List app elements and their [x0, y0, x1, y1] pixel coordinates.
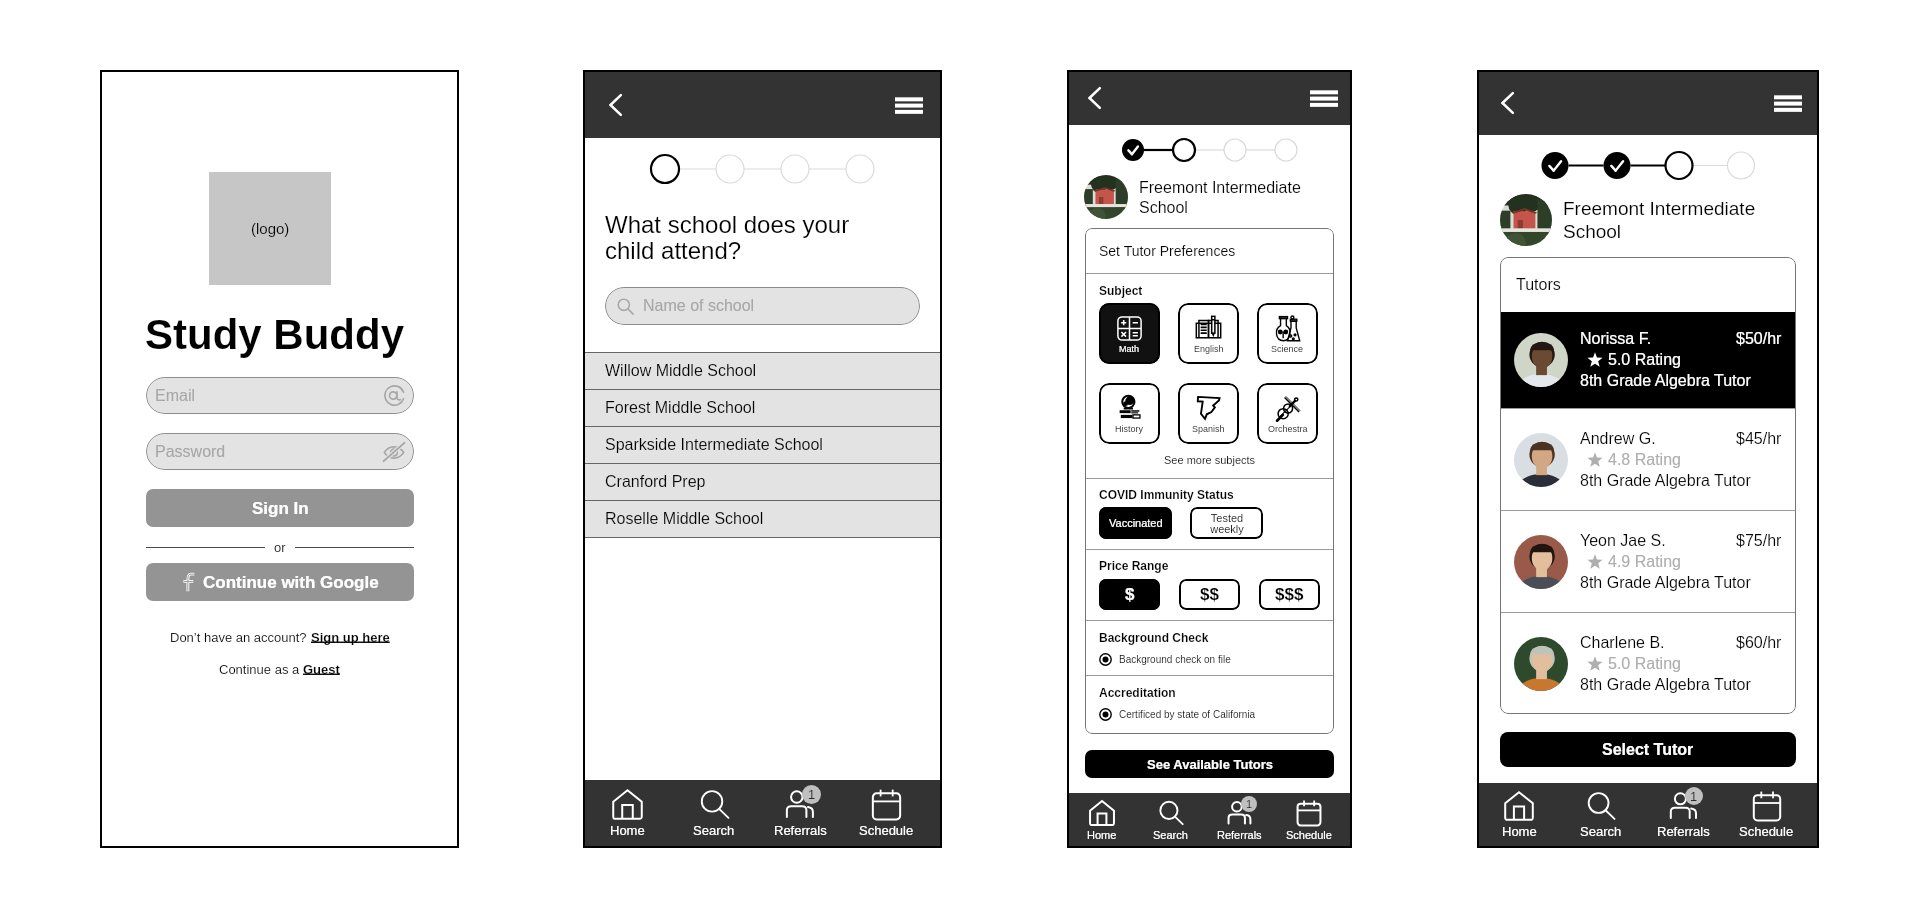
button[interactable]: Sparkside Intermediate School: [584, 427, 941, 463]
button[interactable]: Search: [671, 780, 757, 847]
staticText: What school does your child attend?: [605, 211, 850, 264]
staticText: $$$: [1275, 585, 1304, 604]
staticText: Sign In: [252, 499, 309, 518]
staticText: Search: [1153, 829, 1188, 841]
staticText: Cranford Prep: [605, 473, 706, 491]
button[interactable]: Menu: [1774, 89, 1802, 117]
staticText: See Available Tutors: [1147, 757, 1273, 772]
button[interactable]: Home: [1068, 793, 1136, 847]
button[interactable]: Norissa F.: [1500, 312, 1796, 408]
staticText: Tutors: [1516, 276, 1561, 294]
staticText: Continue with Google: [203, 573, 379, 592]
staticText: Schedule: [1286, 829, 1332, 841]
button[interactable]: Email: [146, 377, 414, 414]
staticText: Freemont Intermediate School: [1563, 198, 1798, 242]
staticText: Home: [1502, 824, 1537, 839]
button[interactable]: 1: [1642, 783, 1725, 847]
staticText: Vaccinated: [1109, 517, 1163, 529]
button[interactable]: Spanish: [1178, 383, 1239, 444]
staticText: Science: [1271, 344, 1304, 354]
button[interactable]: Continue as a: [219, 662, 340, 677]
button[interactable]: Home: [584, 780, 671, 847]
button[interactable]: $$: [1179, 579, 1240, 610]
staticText: Price Range: [1099, 559, 1169, 572]
staticText: Set Tutor Preferences: [1099, 243, 1236, 259]
staticText: Spanish: [1192, 424, 1225, 434]
staticText: History: [1115, 424, 1144, 434]
button[interactable]: Password: [146, 433, 414, 470]
button[interactable]: Home: [1478, 783, 1560, 847]
button[interactable]: Sign In: [146, 489, 414, 527]
button[interactable]: Schedule: [1274, 793, 1343, 847]
button[interactable]: History: [1099, 383, 1160, 444]
staticText: 5.0 Rating: [1608, 351, 1681, 369]
button[interactable]: Charlene B.: [1500, 613, 1796, 714]
button[interactable]: Name of school: [605, 287, 920, 325]
button[interactable]: Vaccinated: [1099, 507, 1172, 539]
staticText: Sign up here: [311, 630, 390, 645]
button[interactable]: Math: [1099, 303, 1160, 364]
staticText: $75/hr: [1736, 532, 1782, 550]
staticText: Referrals: [1657, 824, 1710, 839]
staticText: (logo): [251, 220, 290, 237]
button[interactable]: Menu: [895, 91, 923, 119]
staticText: Schedule: [1739, 824, 1794, 839]
button[interactable]: Search: [1136, 793, 1205, 847]
staticText: See more subjects: [1164, 454, 1256, 466]
button[interactable]: Select Tutor: [1500, 732, 1796, 767]
staticText: English: [1194, 344, 1224, 354]
button[interactable]: Schedule: [843, 780, 929, 847]
staticText: Study Buddy: [145, 311, 404, 358]
button[interactable]: Schedule: [1725, 783, 1808, 847]
button[interactable]: Roselle Middle School: [584, 501, 941, 537]
button[interactable]: Certificed by state of California: [1099, 708, 1320, 721]
staticText: Schedule: [859, 823, 914, 838]
button[interactable]: Willow Middle School: [584, 353, 941, 389]
staticText: $50/hr: [1736, 330, 1782, 348]
button[interactable]: Science: [1257, 303, 1318, 364]
staticText: COVID Immunity Status: [1099, 488, 1234, 501]
button[interactable]: $$$: [1259, 579, 1320, 610]
staticText: 8th Grade Algebra Tutor: [1580, 372, 1751, 390]
button[interactable]: 1: [757, 780, 843, 847]
button[interactable]: $: [1099, 579, 1160, 610]
staticText: 8th Grade Algebra Tutor: [1580, 472, 1751, 490]
button[interactable]: Back: [602, 91, 630, 119]
staticText: 1: [808, 787, 816, 802]
button[interactable]: Back: [1081, 84, 1109, 112]
button[interactable]: Back: [1494, 89, 1522, 117]
button[interactable]: Background check on file: [1099, 653, 1320, 666]
button[interactable]: See Available Tutors: [1085, 750, 1334, 778]
staticText: 5.0 Rating: [1608, 655, 1681, 673]
staticText: Background Check: [1099, 631, 1209, 644]
staticText: 8th Grade Algebra Tutor: [1580, 574, 1751, 592]
button[interactable]: Continue with Google: [146, 563, 414, 601]
staticText: Accreditation: [1099, 686, 1176, 699]
button[interactable]: Forest Middle School: [584, 390, 941, 426]
staticText: 4.9 Rating: [1608, 553, 1681, 571]
button[interactable]: Search: [1560, 783, 1642, 847]
staticText: Sparkside Intermediate School: [605, 436, 823, 454]
staticText: $$: [1200, 585, 1219, 604]
staticText: $: [1125, 585, 1135, 604]
staticText: Password: [155, 443, 383, 461]
button[interactable]: Cranford Prep: [584, 464, 941, 500]
staticText: 8th Grade Algebra Tutor: [1580, 676, 1751, 694]
staticText: $45/hr: [1736, 430, 1782, 448]
staticText: Freemont Intermediate School: [1139, 179, 1332, 216]
staticText: Andrew G.: [1580, 430, 1736, 448]
button[interactable]: Tested weekly: [1190, 507, 1263, 539]
button[interactable]: Don’t have an account?: [170, 630, 390, 645]
staticText: $60/hr: [1736, 634, 1782, 652]
button[interactable]: Andrew G.: [1500, 409, 1796, 510]
button[interactable]: See more subjects: [1099, 454, 1320, 466]
staticText: Math: [1119, 344, 1140, 354]
staticText: Don’t have an account?: [170, 630, 311, 645]
button[interactable]: Orchestra: [1257, 383, 1318, 444]
button[interactable]: Yeon Jae S.: [1500, 511, 1796, 612]
staticText: Norissa F.: [1580, 330, 1736, 348]
button[interactable]: English: [1178, 303, 1239, 364]
staticText: Charlene B.: [1580, 634, 1736, 652]
button[interactable]: Menu: [1310, 84, 1338, 112]
button[interactable]: 1: [1205, 793, 1274, 847]
